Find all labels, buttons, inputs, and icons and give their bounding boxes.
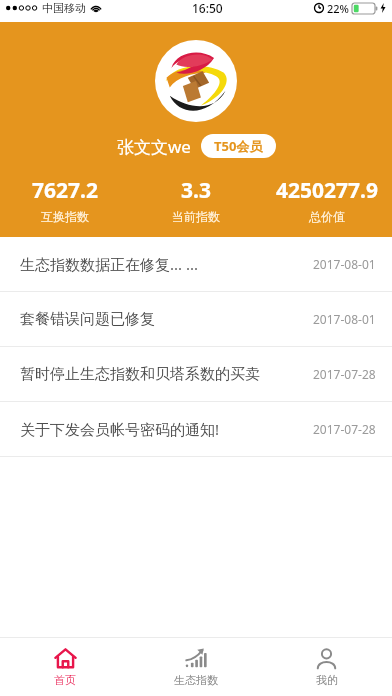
staticText: 我的 [316,673,338,687]
button[interactable]: 生态指数数据正在修复... ... [0,237,392,291]
button[interactable]: 暂时停止生态指数和贝塔系数的买卖 [0,347,392,401]
button[interactable]: 7627.2 [0,176,130,224]
staticText: 当前指数 [172,209,220,224]
staticText: T50会员 [214,137,263,155]
button[interactable]: 3.3 [130,176,261,224]
button[interactable]: 关于下发会员帐号密码的通知! [0,402,392,456]
staticText: 互换指数 [41,209,89,224]
staticText: 生态指数 [174,673,218,687]
staticText: 暂时停止生态指数和贝塔系数的买卖 [20,365,260,384]
staticText: 中国移动 [42,1,86,15]
staticText: 2017-08-01 [313,256,376,272]
staticText: 首页 [54,673,76,687]
button[interactable]: 首页 [0,638,130,696]
staticText: 16:50 [192,0,223,16]
staticText: 7627.2 [32,176,98,205]
button[interactable]: T50会员 [201,134,276,158]
staticText: 2017-08-01 [313,311,376,327]
other: Profile logo [155,40,237,122]
staticText: 套餐错误问题已修复 [20,310,155,329]
staticText: 生态指数数据正在修复... ... [20,254,199,274]
staticText: 张文文we [117,135,191,158]
button[interactable]: 4250277.9 [261,176,392,224]
staticText: 2017-07-28 [313,421,376,437]
staticText: 22% [327,1,349,16]
staticText: 4250277.9 [276,176,378,205]
staticText: 3.3 [181,176,211,205]
staticText: 2017-07-28 [313,366,376,382]
button[interactable]: 生态指数 [130,638,261,696]
button[interactable]: 我的 [261,638,392,696]
staticText: 总价值 [309,209,345,224]
button[interactable]: 套餐错误问题已修复 [0,292,392,346]
staticText: 关于下发会员帐号密码的通知! [20,419,220,439]
